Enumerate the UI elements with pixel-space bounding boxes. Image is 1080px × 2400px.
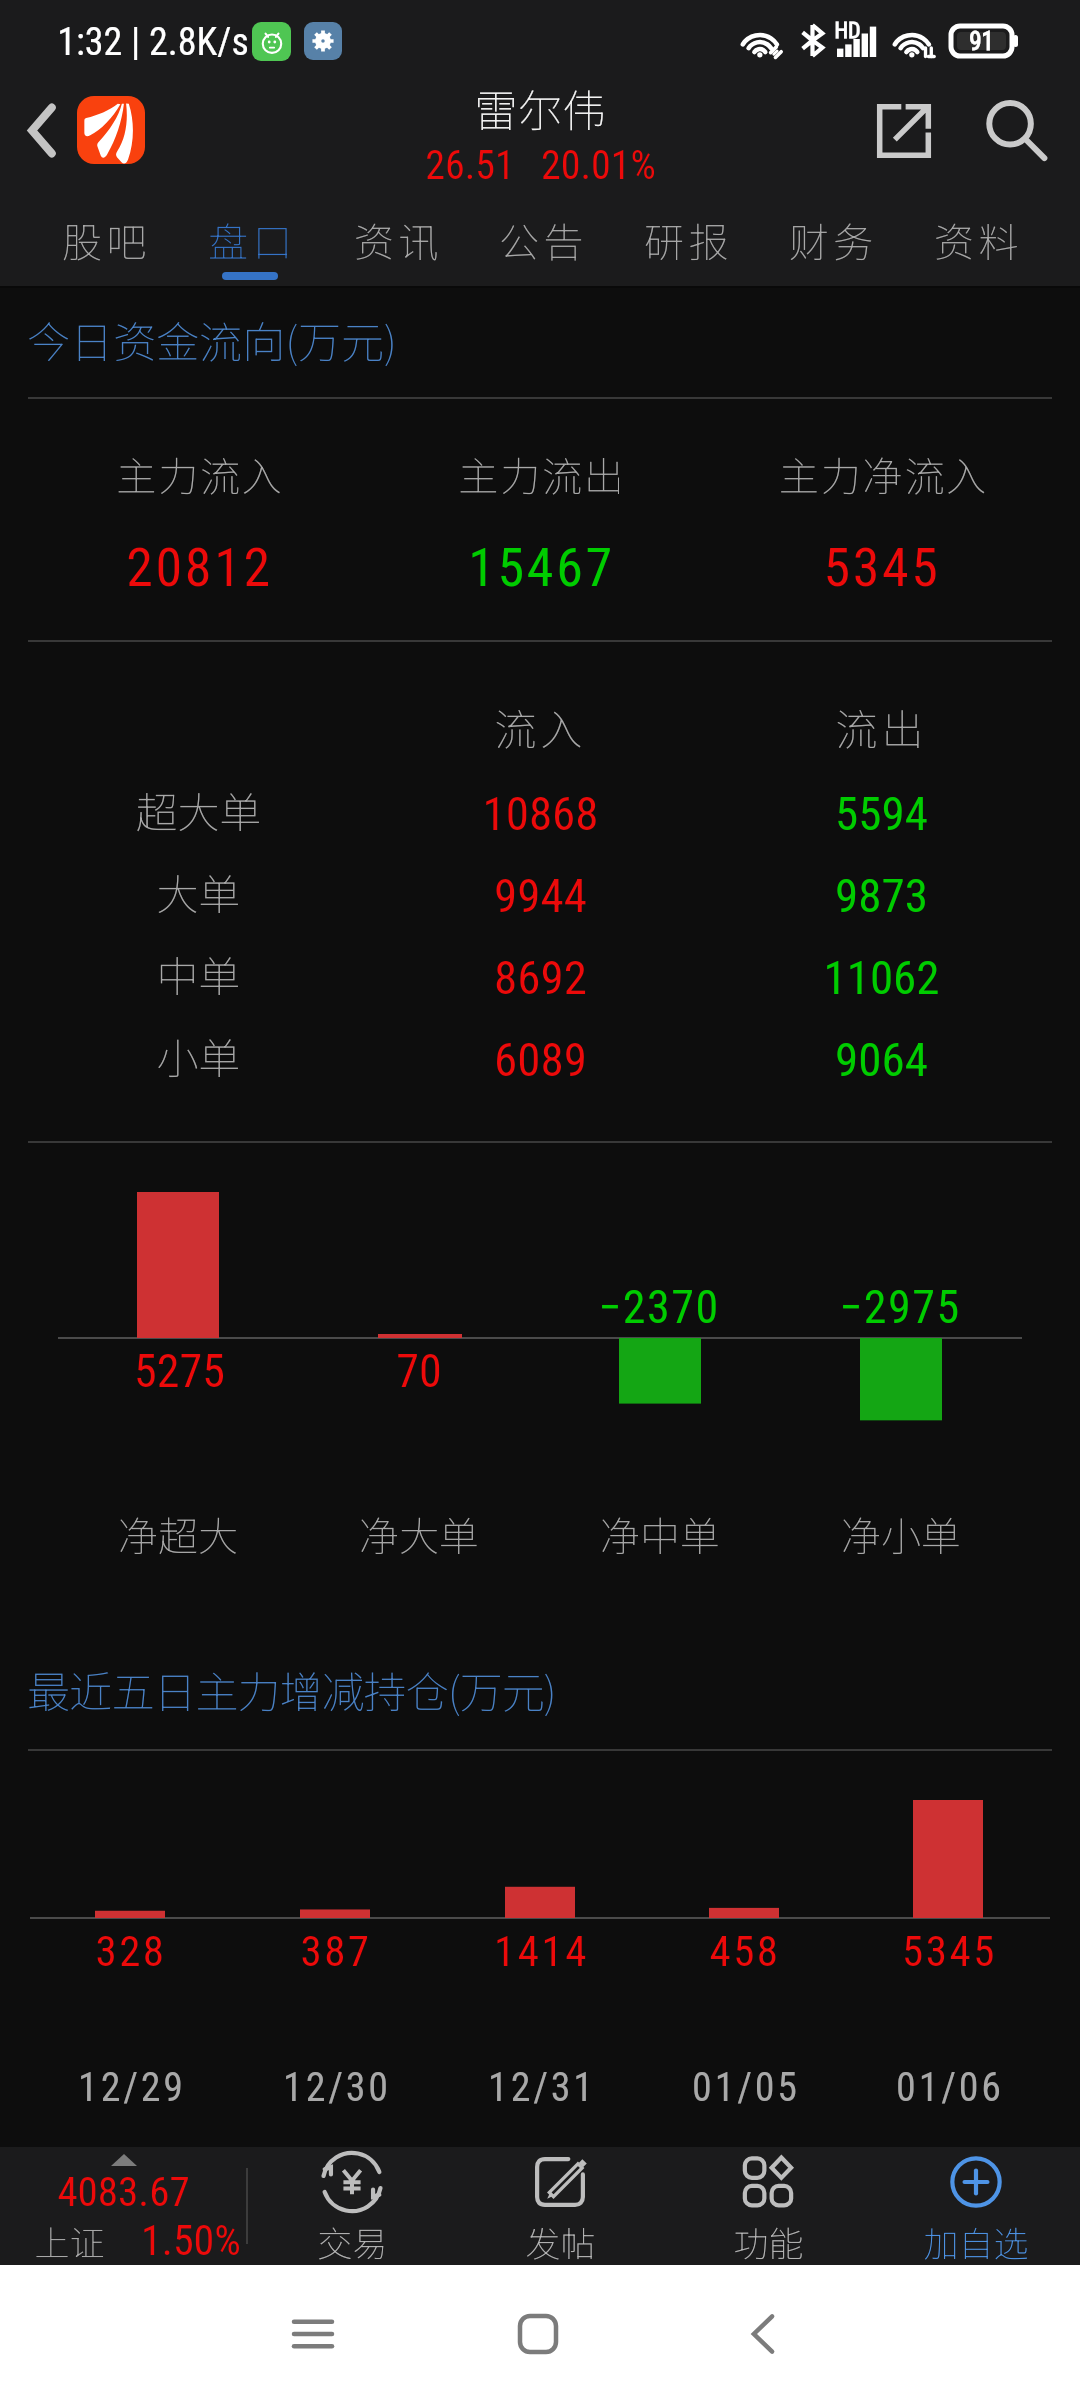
button[interactable]: 研报 — [614, 196, 759, 288]
staticText: 中单 — [156, 943, 241, 1004]
staticText: 12/29 — [78, 2064, 186, 2111]
staticText: 70 — [396, 1344, 442, 1398]
button[interactable]: 盘口 — [177, 196, 323, 288]
staticText: 流入 — [494, 696, 587, 757]
button[interactable]: 资料 — [904, 196, 1049, 288]
staticText: 1.50% — [141, 2216, 241, 2265]
button[interactable]: Eastmoney home — [77, 96, 145, 164]
staticText: 加自选 — [923, 2216, 1029, 2264]
button[interactable]: 4083.67 — [0, 2147, 248, 2265]
staticText: 8692 — [494, 950, 587, 1005]
button[interactable]: 资讯 — [323, 196, 469, 288]
staticText: 财务 — [789, 211, 878, 269]
staticText: 主力净流入 — [779, 445, 988, 503]
staticText: 387 — [300, 1926, 372, 1976]
staticText: 净大单 — [359, 1505, 479, 1563]
button[interactable]: 发帖 — [456, 2147, 664, 2265]
staticText: 公告 — [499, 211, 588, 269]
staticText: 盘口 — [208, 211, 297, 269]
button[interactable]: Home — [490, 2286, 586, 2382]
staticText: 1:32 | 2.8K/s — [57, 20, 249, 65]
staticText: 净小单 — [841, 1505, 961, 1563]
staticText: 大单 — [156, 861, 241, 922]
staticText: 12/30 — [283, 2064, 391, 2111]
staticText: −2370 — [598, 1280, 720, 1334]
staticText: 1414 — [494, 1926, 589, 1976]
staticText: 资料 — [934, 211, 1023, 269]
button[interactable]: Back — [715, 2286, 811, 2382]
button[interactable]: 公告 — [469, 196, 614, 288]
staticText: 5594 — [835, 786, 928, 841]
staticText: 4083.67 — [57, 2168, 190, 2216]
staticText: 净中单 — [600, 1505, 720, 1563]
staticText: 458 — [709, 1926, 781, 1976]
staticText: 26.51 — [425, 142, 515, 189]
button[interactable]: 财务 — [759, 196, 904, 288]
staticText: 雷尔伟 — [474, 76, 606, 140]
staticText: 9064 — [835, 1032, 928, 1087]
staticText: 11062 — [823, 950, 940, 1005]
button[interactable]: Search — [952, 75, 1080, 187]
button[interactable]: 功能 — [664, 2147, 872, 2265]
button[interactable]: 交易 — [248, 2147, 456, 2265]
staticText: 91 — [969, 27, 994, 56]
button[interactable]: Share — [856, 75, 952, 187]
button[interactable]: 加自选 — [872, 2147, 1080, 2265]
staticText: 流出 — [835, 696, 928, 757]
staticText: 交易 — [317, 2216, 388, 2264]
staticText: 研报 — [644, 211, 733, 269]
button[interactable]: Back — [0, 74, 84, 186]
button[interactable]: 今日资金流向(万元) — [0, 285, 1080, 393]
button[interactable]: 最近五日主力增减持仓(万元) — [0, 1635, 1080, 1743]
staticText: 小单 — [156, 1025, 241, 1086]
staticText: 今日资金流向(万元) — [27, 308, 397, 370]
staticText: HD — [834, 18, 861, 44]
staticText: 股吧 — [62, 211, 151, 269]
staticText: 15467 — [468, 536, 615, 599]
staticText: 超大单 — [135, 779, 262, 840]
staticText: 01/06 — [896, 2064, 1004, 2111]
staticText: 10868 — [482, 786, 599, 841]
button[interactable]: Recent apps — [265, 2286, 361, 2382]
staticText: 20.01% — [541, 142, 656, 189]
staticText: 328 — [95, 1926, 167, 1976]
staticText: 5345 — [902, 1926, 997, 1976]
staticText: 主力流出 — [458, 445, 626, 503]
staticText: 9873 — [835, 868, 928, 923]
staticText: 6089 — [494, 1032, 587, 1087]
staticText: 资讯 — [354, 211, 443, 269]
staticText: 9944 — [494, 868, 587, 923]
staticText: 01/05 — [692, 2064, 800, 2111]
staticText: 12/31 — [488, 2064, 596, 2111]
staticText: 功能 — [733, 2216, 804, 2264]
staticText: 主力流入 — [116, 445, 284, 503]
staticText: 20812 — [126, 536, 273, 599]
staticText: 净超大 — [118, 1505, 238, 1563]
staticText: −2975 — [839, 1280, 961, 1334]
staticText: 最近五日主力增减持仓(万元) — [27, 1658, 556, 1720]
staticText: 上证 — [34, 2215, 105, 2266]
staticText: 5275 — [134, 1344, 225, 1398]
staticText: 发帖 — [525, 2216, 596, 2264]
staticText: 5345 — [823, 536, 941, 599]
button[interactable]: 股吧 — [31, 196, 177, 288]
